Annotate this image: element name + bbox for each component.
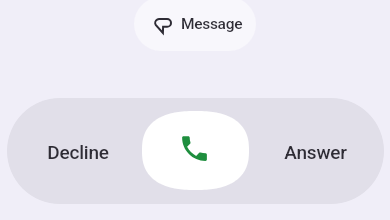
button[interactable]: Answer [245,99,384,204]
button[interactable]: Answer call [142,111,249,190]
button[interactable]: Message [134,0,256,51]
button[interactable]: Decline [8,99,148,204]
staticText: Decline [47,141,109,163]
staticText: Answer [284,141,347,163]
staticText: Message [181,15,243,33]
